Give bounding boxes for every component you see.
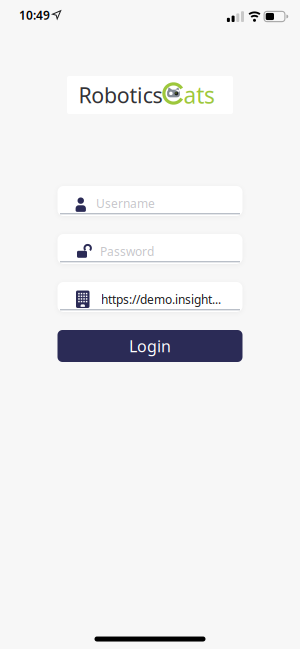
staticText: Username (96, 195, 155, 211)
staticText: 10:49 (19, 7, 50, 23)
staticText: Login (129, 335, 171, 357)
staticText: Password (100, 243, 154, 259)
staticText: https://demo.insight... (101, 291, 221, 307)
staticText: ats (183, 80, 215, 110)
staticText: Robotics (79, 81, 162, 109)
button[interactable]: https://demo.insight... (57, 282, 242, 312)
button[interactable]: Login (57, 330, 242, 362)
button[interactable]: Username (57, 186, 242, 216)
button[interactable]: Password (57, 234, 242, 264)
